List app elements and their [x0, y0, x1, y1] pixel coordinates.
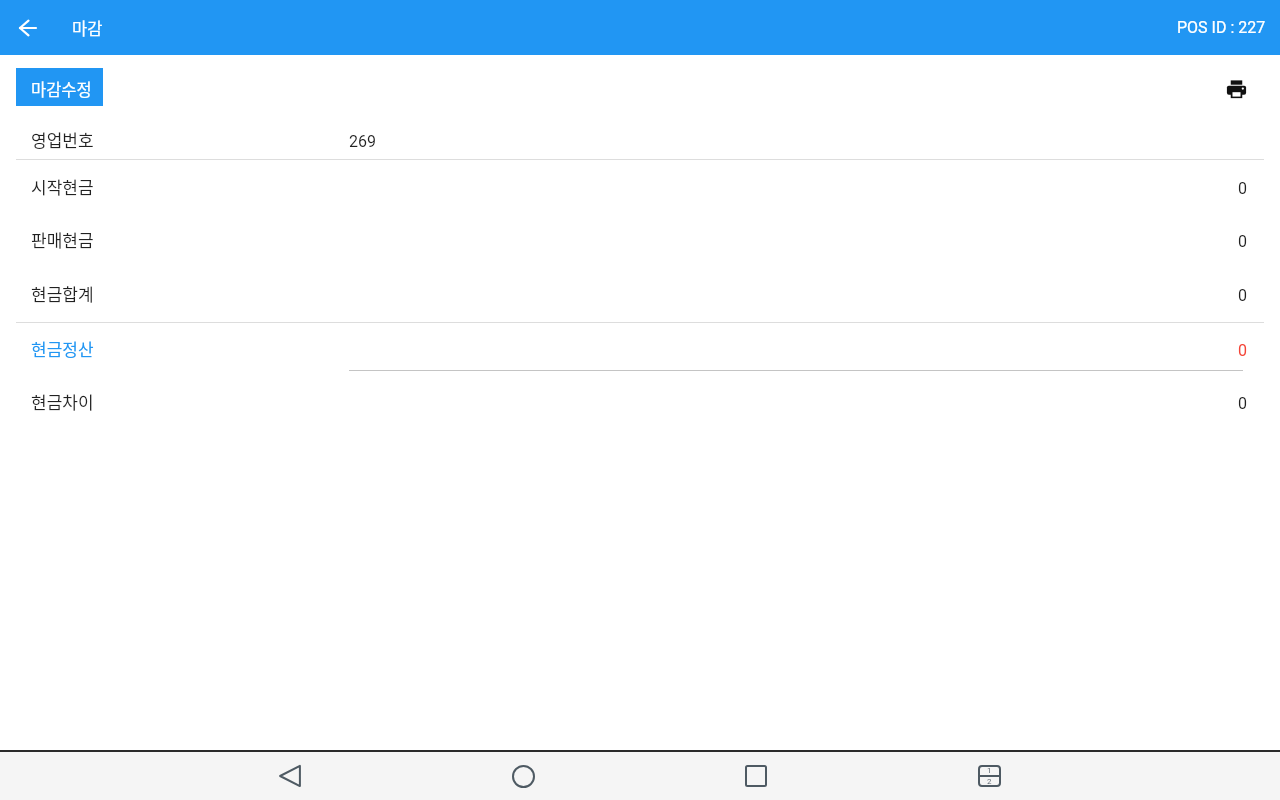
staticText: 마감수정: [31, 77, 92, 101]
button[interactable]: [266, 752, 314, 800]
staticText: 판매현금: [31, 227, 94, 252]
staticText: 영업번호: [31, 127, 94, 152]
staticText: 마감: [72, 16, 103, 40]
staticText: 현금합계: [31, 281, 94, 306]
staticText: 0: [1238, 179, 1247, 198]
staticText: 0: [1238, 286, 1247, 305]
button[interactable]: 마감수정: [16, 68, 103, 106]
staticText: 269: [349, 132, 376, 151]
staticText: 0: [1238, 394, 1247, 413]
button[interactable]: [732, 752, 780, 800]
button[interactable]: [499, 752, 547, 800]
staticText: 현금차이: [31, 389, 94, 414]
staticText: 현금정산: [31, 336, 94, 361]
staticText: 0: [1238, 232, 1247, 251]
button[interactable]: [349, 326, 1243, 371]
staticText: POS ID : 227: [1177, 18, 1266, 37]
button[interactable]: [1218, 71, 1254, 107]
staticText: 0: [1238, 341, 1247, 360]
staticText: 2: [987, 777, 992, 786]
staticText: 시작현금: [31, 174, 94, 199]
button[interactable]: 1: [965, 752, 1013, 800]
staticText: 1: [987, 766, 992, 775]
button[interactable]: [12, 12, 44, 44]
